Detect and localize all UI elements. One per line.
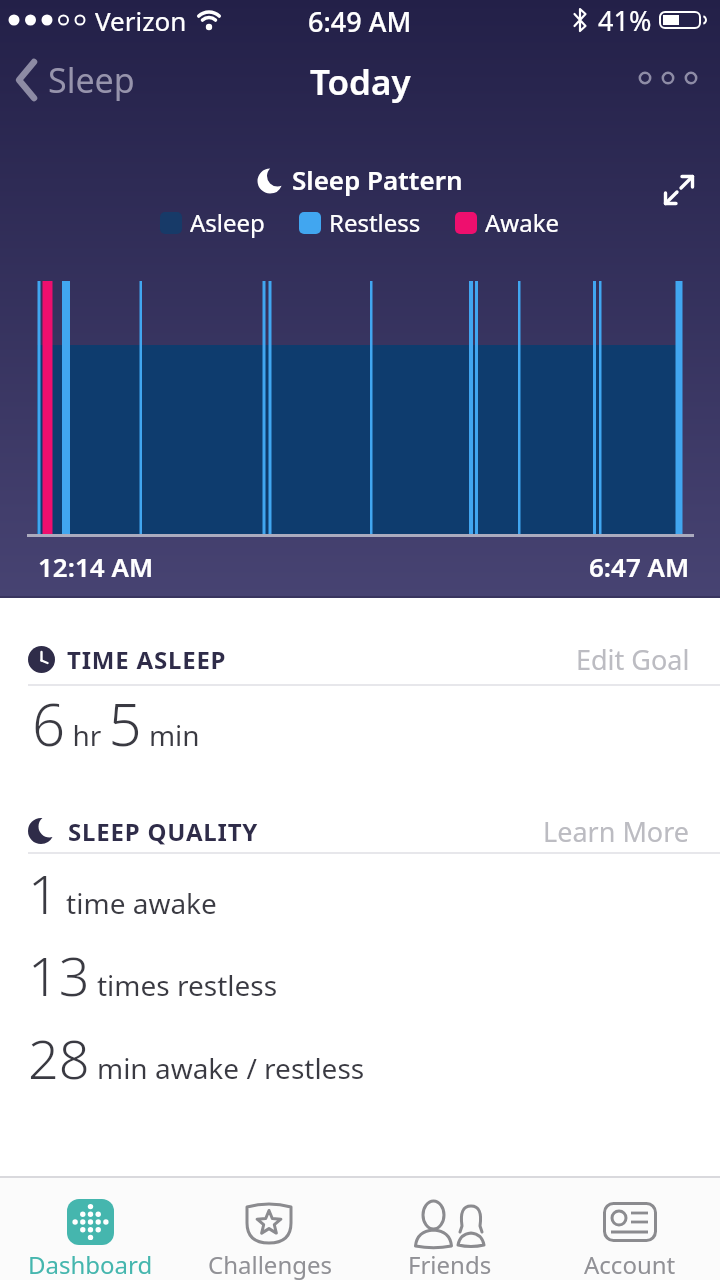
staticText: 6:47 AM [589,549,690,584]
button[interactable] [639,71,697,85]
button[interactable] [664,175,694,205]
button[interactable]: Challenges [180,1178,360,1280]
staticText: Today [310,58,411,106]
staticText: 1 time awake [28,856,217,930]
staticText: Restless [329,206,421,239]
staticText: Awake [485,206,560,239]
staticText: Verizon [95,3,187,38]
staticText: 13 times restless [28,938,278,1012]
button[interactable]: SLEEP QUALITY [28,812,690,850]
staticText: Sleep Pattern [292,162,463,197]
button[interactable]: TIME ASLEEP [28,640,690,678]
staticText: 28 min awake / restless [28,1021,365,1095]
staticText: TIME ASLEEP [67,643,227,676]
staticText: 6:49 AM [308,3,412,40]
staticText: Account [584,1248,676,1280]
staticText: Dashboard [28,1248,153,1280]
staticText: Edit Goal [576,641,690,678]
button[interactable]: Friends [360,1178,540,1280]
staticText: 41% [598,2,652,39]
staticText: Asleep [190,206,265,239]
staticText: Challenges [208,1248,333,1280]
staticText: Friends [408,1248,492,1280]
staticText: 12:14 AM [38,549,154,584]
button[interactable]: Sleep [14,56,135,104]
staticText: SLEEP QUALITY [68,815,259,848]
button[interactable]: Dashboard [0,1178,180,1280]
staticText: Learn More [543,813,690,850]
staticText: Sleep [48,57,135,103]
button[interactable]: Account [540,1178,720,1280]
staticText: 6 hr 5 min [32,684,200,763]
